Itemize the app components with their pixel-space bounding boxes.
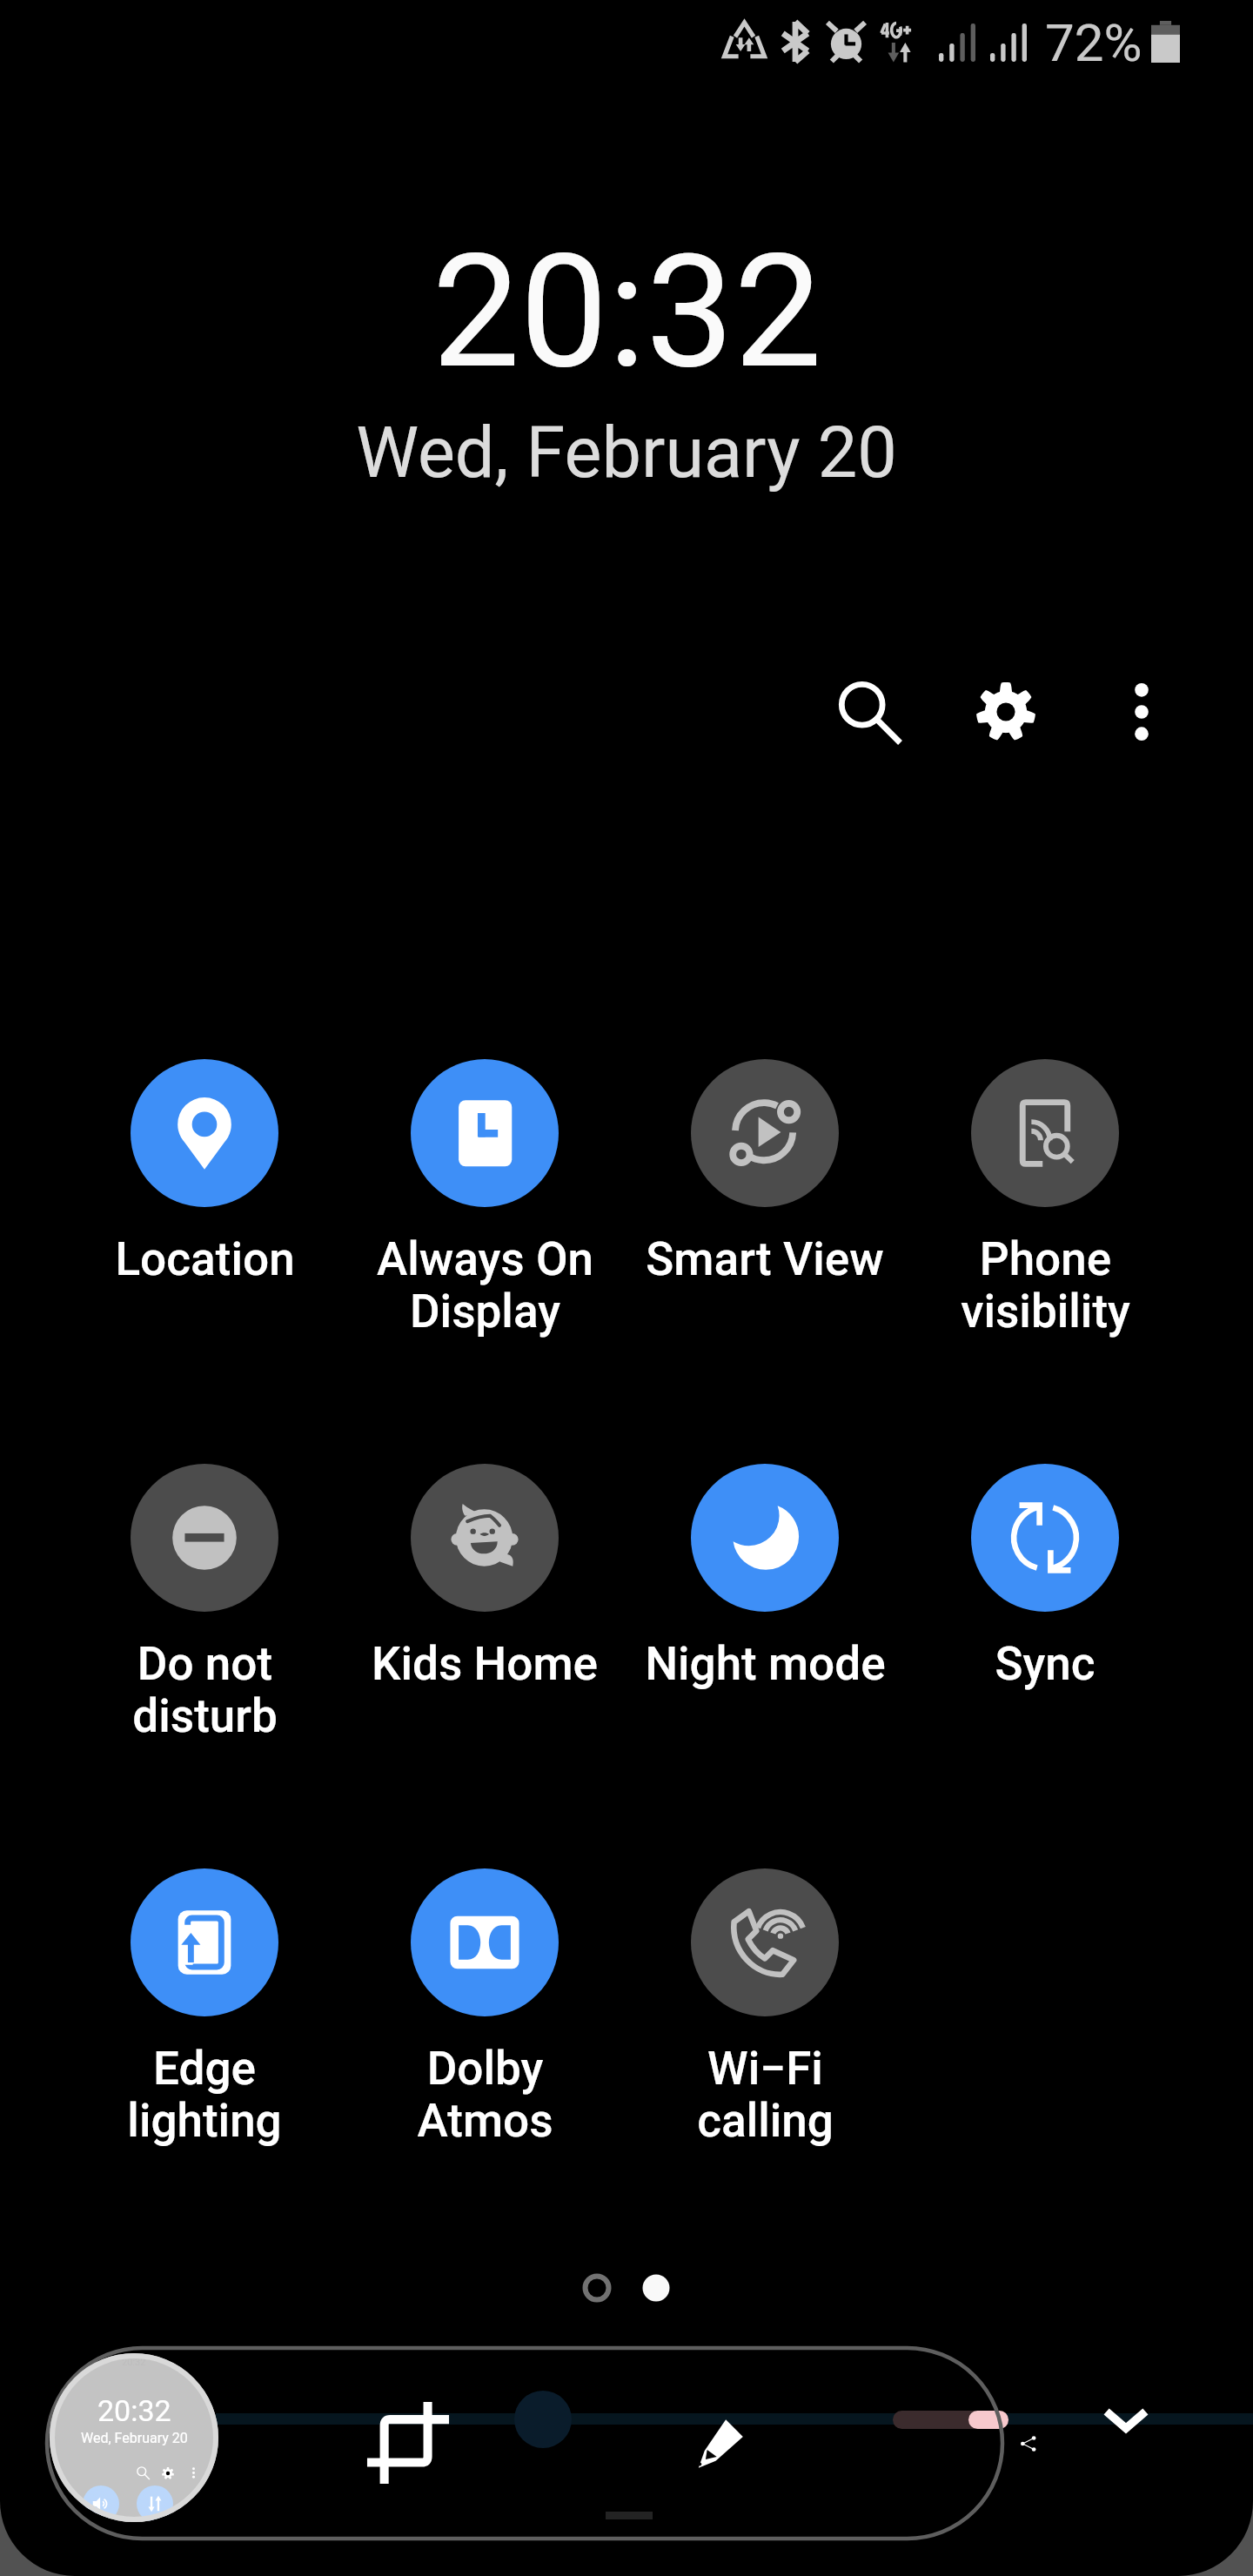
button[interactable]: Location xyxy=(74,1059,335,1286)
button[interactable]: Always On Display xyxy=(354,1059,615,1338)
staticText: 72% xyxy=(1045,12,1142,73)
staticText: 20:32 xyxy=(97,2393,171,2428)
button[interactable]: Settings xyxy=(945,651,1067,773)
staticText: Do not disturb xyxy=(132,1637,278,1743)
staticText: Dolby Atmos xyxy=(417,2042,553,2148)
staticText: Edge lighting xyxy=(127,2042,282,2148)
staticText: Wed, February 20 xyxy=(81,2430,188,2446)
staticText: Wed, February 20 xyxy=(356,412,897,494)
button[interactable]: Sync xyxy=(915,1464,1176,1691)
button[interactable]: Share xyxy=(985,2400,1072,2487)
staticText: Sync xyxy=(995,1637,1096,1691)
button[interactable]: Draw xyxy=(653,2378,784,2509)
staticText: Phone visibility xyxy=(961,1232,1130,1338)
button[interactable]: Do not disturb xyxy=(74,1464,335,1743)
staticText: 20:32 xyxy=(122,2357,146,2368)
staticText: Night mode xyxy=(645,1637,886,1691)
button[interactable]: More options xyxy=(1081,651,1203,773)
button[interactable]: Smart View xyxy=(634,1059,895,1286)
staticText: Always On Display xyxy=(377,1232,593,1338)
button[interactable]: Search xyxy=(808,651,930,773)
staticText: Kids Home xyxy=(372,1637,598,1691)
button[interactable]: Night mode xyxy=(634,1464,895,1691)
button[interactable]: Dismiss xyxy=(1074,2368,1178,2472)
button[interactable]: Dolby Atmos xyxy=(354,1868,615,2148)
staticText: Wi−Fi calling xyxy=(697,2042,834,2148)
button[interactable]: Edge lighting xyxy=(74,1868,335,2148)
button[interactable]: Screenshot preview xyxy=(50,2353,218,2522)
button[interactable]: Kids Home xyxy=(354,1464,615,1691)
staticText: Smart View xyxy=(646,1232,884,1286)
staticText: 20:32 xyxy=(432,220,822,404)
button[interactable]: Crop xyxy=(334,2369,482,2517)
button[interactable]: Phone visibility xyxy=(915,1059,1176,1338)
button[interactable]: Wi−Fi calling xyxy=(634,1868,895,2148)
staticText: Location xyxy=(115,1232,295,1286)
